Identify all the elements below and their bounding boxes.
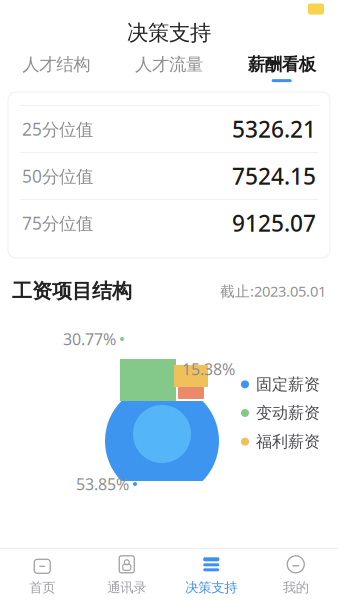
staticText: 75分位值 [22, 211, 93, 234]
staticText: 9125.07 [232, 208, 316, 238]
button[interactable]: 人才结构 [0, 50, 113, 86]
staticText: 人才结构 [22, 54, 90, 75]
staticText: 25分位值 [22, 117, 93, 140]
staticText: 福利薪资 [256, 432, 320, 451]
staticText: 7524.15 [232, 161, 316, 191]
staticText: 30.77% [63, 328, 116, 350]
staticText: 固定薪资 [256, 374, 320, 394]
button[interactable]: 薪酬看板 [225, 50, 338, 86]
staticText: 截止:2023.05.01 [220, 281, 326, 301]
staticText: 首页 [29, 579, 55, 596]
staticText: 50分位值 [22, 164, 93, 187]
button[interactable]: 人才流量 [113, 50, 225, 86]
staticText: 薪酬看板 [248, 54, 316, 75]
staticText: 决策支持 [127, 20, 211, 46]
staticText: 53.85% [76, 473, 129, 495]
button[interactable]: 通讯录 [84, 549, 169, 600]
staticText: 15.38% [182, 358, 235, 380]
button[interactable]: 首页 [0, 549, 84, 600]
staticText: 变动薪资 [256, 403, 320, 423]
staticText: 我的 [283, 579, 309, 596]
button[interactable]: 决策支持 [169, 549, 253, 600]
staticText: 工资项目结构 [12, 279, 132, 303]
staticText: 通讯录 [107, 579, 146, 596]
staticText: 决策支持 [185, 579, 237, 596]
button[interactable]: 我的 [253, 549, 338, 600]
staticText: 人才流量 [135, 54, 203, 75]
staticText: 5326.21 [232, 114, 316, 144]
